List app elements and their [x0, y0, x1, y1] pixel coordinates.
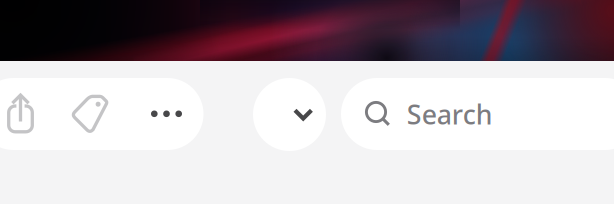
staticText: Search	[407, 96, 493, 132]
button[interactable]	[0, 78, 203, 150]
button[interactable]: Collapse	[253, 78, 326, 151]
button[interactable]: Search	[341, 78, 614, 150]
